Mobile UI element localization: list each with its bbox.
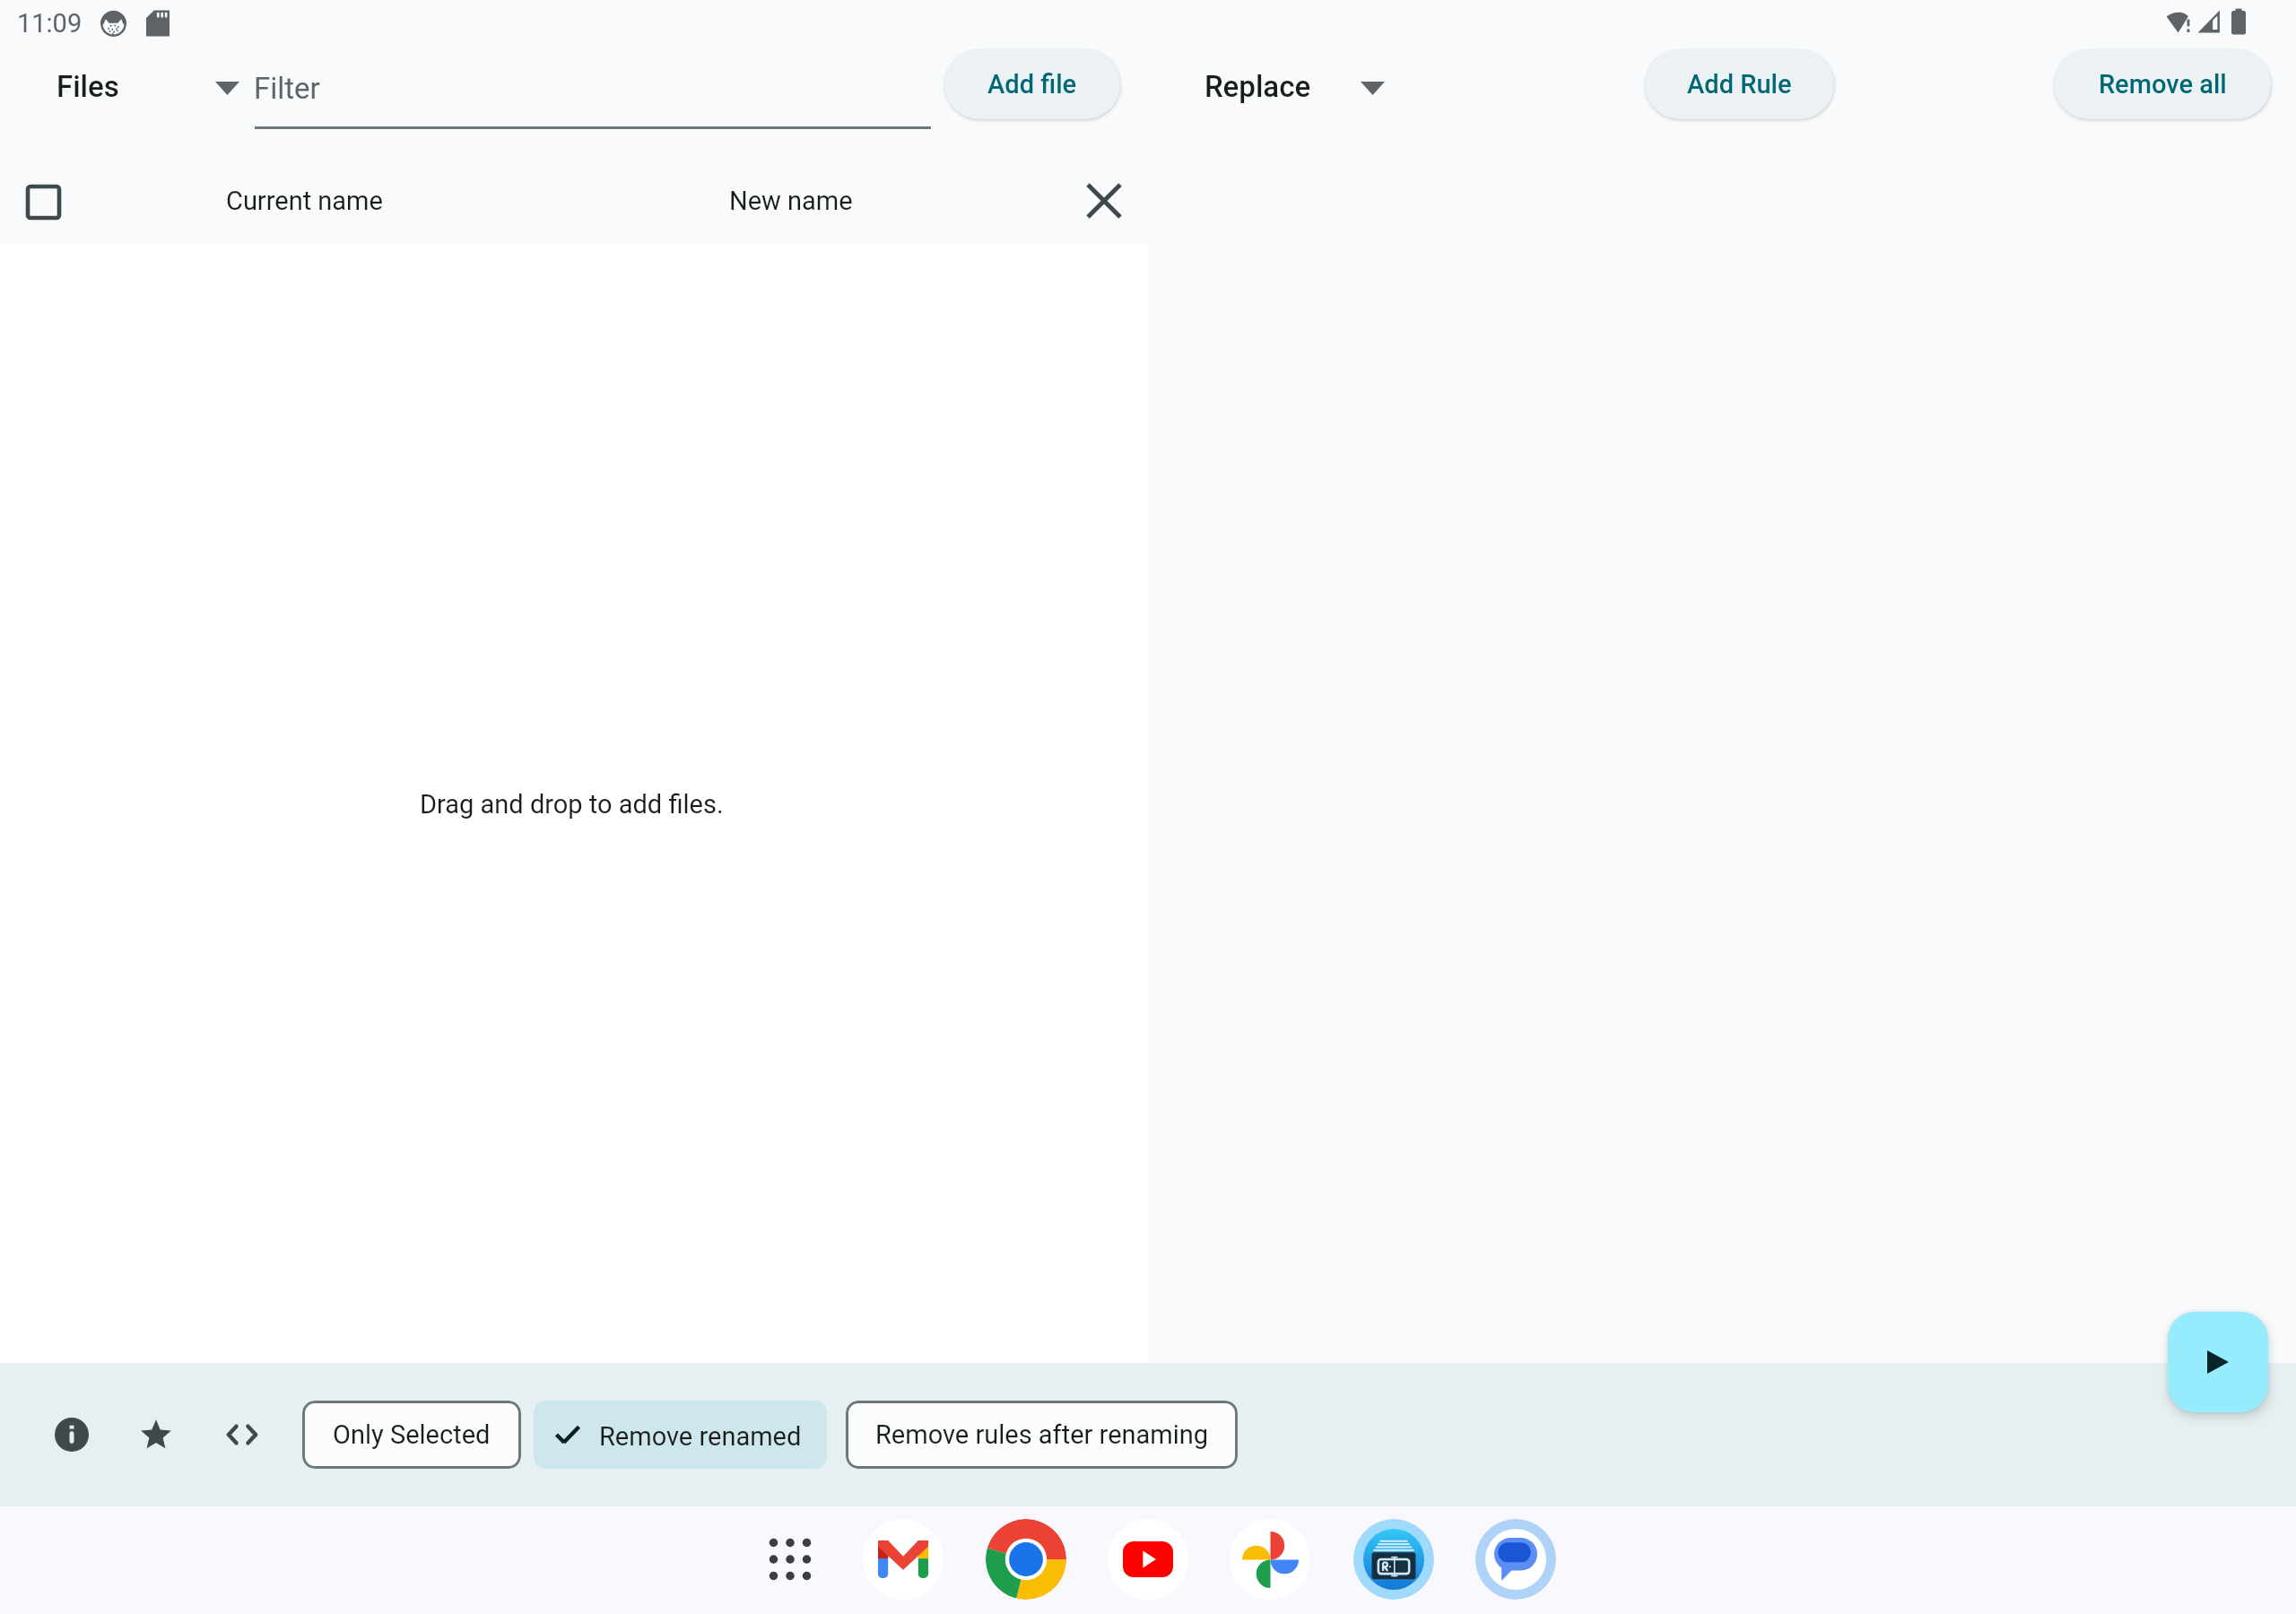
staticText: Drag and drop to add files. [420, 789, 724, 820]
button[interactable]: YouTube [1108, 1519, 1188, 1600]
staticText: Remove all [2099, 69, 2227, 100]
button[interactable]: Favorite rules [126, 1404, 187, 1465]
button[interactable]: Only Selected [302, 1401, 521, 1469]
button[interactable]: Remove rules after renaming [846, 1401, 1238, 1469]
staticText: Current name [226, 186, 383, 216]
button[interactable]: Remove all [2054, 49, 2271, 119]
button[interactable]: Clear all [1074, 171, 1134, 230]
button[interactable]: Info [41, 1404, 102, 1465]
button[interactable]: Start rename [2168, 1312, 2268, 1412]
button[interactable]: Add file [944, 49, 1120, 119]
staticText: Files [57, 69, 119, 104]
button[interactable]: Messages [1475, 1519, 1556, 1600]
staticText: New name [729, 186, 853, 216]
button[interactable]: Regex mode [212, 1404, 273, 1465]
button[interactable]: Photos [1230, 1519, 1310, 1600]
button[interactable]: Remove renamed [534, 1401, 827, 1469]
button[interactable]: Chrome [986, 1519, 1066, 1600]
staticText: Filter [254, 71, 320, 106]
staticText: Replace [1205, 69, 1311, 104]
button[interactable]: Files [40, 56, 249, 115]
button[interactable]: Select all files [14, 173, 72, 230]
staticText: 11:09 [17, 8, 83, 39]
button[interactable]: Add Rule [1645, 49, 1834, 119]
button[interactable]: Filter [255, 49, 931, 134]
button[interactable]: Gmail [863, 1519, 944, 1600]
staticText: Remove rules after renaming [875, 1419, 1209, 1450]
button[interactable]: All apps [760, 1529, 821, 1590]
staticText: Add file [987, 69, 1077, 100]
staticText: Add Rule [1687, 69, 1792, 100]
staticText: Remove renamed [599, 1421, 802, 1452]
button[interactable]: Replace [1188, 56, 1402, 115]
staticText: Only Selected [333, 1419, 491, 1450]
button[interactable]: Renamer [1353, 1519, 1434, 1600]
